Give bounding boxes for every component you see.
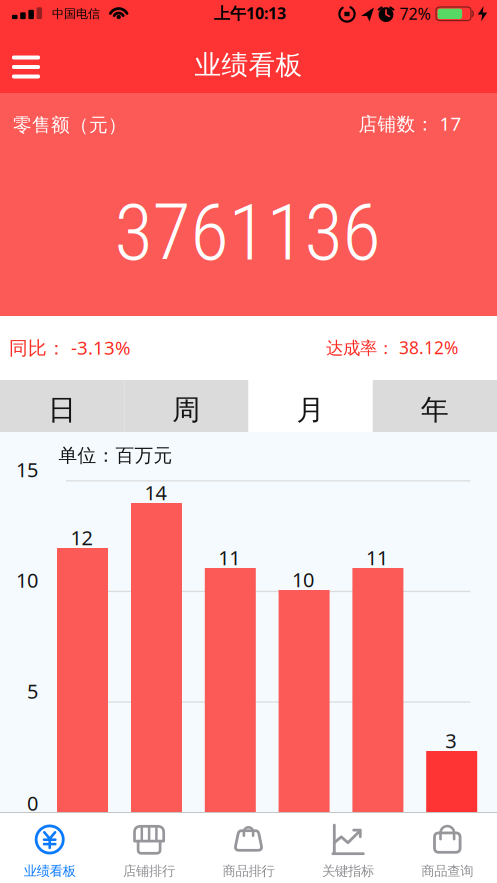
staticText: 年	[421, 393, 449, 427]
staticText: 商品排行	[222, 863, 274, 879]
button[interactable]: 商品查询	[398, 812, 497, 883]
staticText: 单位：百万元	[58, 444, 172, 467]
staticText: 3761136	[114, 186, 380, 279]
button[interactable]: 菜单	[0, 44, 52, 90]
staticText: 商品查询	[421, 863, 473, 879]
staticText: 日	[48, 393, 76, 427]
staticText: 同比： -3.13%	[9, 335, 131, 360]
staticText: 3	[445, 727, 456, 754]
staticText: 零售额（元）	[13, 113, 127, 136]
staticText: 业绩看板	[194, 49, 302, 81]
staticText: 5	[27, 678, 38, 704]
staticText: 中国电信	[52, 6, 100, 21]
button[interactable]: 月	[248, 380, 373, 432]
staticText: 15	[16, 456, 38, 483]
staticText: 12	[70, 524, 92, 551]
staticText: 月	[297, 393, 325, 427]
staticText: 店铺排行	[123, 863, 175, 879]
staticText: 10	[16, 567, 38, 593]
button[interactable]: 周	[124, 380, 248, 432]
button[interactable]: 商品排行	[199, 812, 298, 883]
staticText: 关键指标	[322, 863, 374, 879]
staticText: 周	[172, 393, 200, 427]
button[interactable]: 年	[373, 380, 497, 432]
button[interactable]: 关键指标	[298, 812, 398, 883]
staticText: 72%	[399, 3, 430, 24]
staticText: 业绩看板	[24, 863, 76, 879]
button[interactable]: 日	[0, 380, 124, 432]
staticText: 0	[27, 790, 38, 816]
staticText: 达成率： 38.12%	[326, 336, 458, 359]
button[interactable]: 业绩看板	[0, 812, 99, 883]
button[interactable]: 店铺排行	[99, 812, 199, 883]
staticText: 10	[292, 566, 314, 593]
staticText: 11	[366, 544, 388, 571]
staticText: 上午10:13	[214, 2, 286, 24]
staticText: 店铺数： 17	[358, 111, 461, 136]
staticText: 14	[144, 479, 166, 506]
staticText: 11	[218, 544, 240, 571]
